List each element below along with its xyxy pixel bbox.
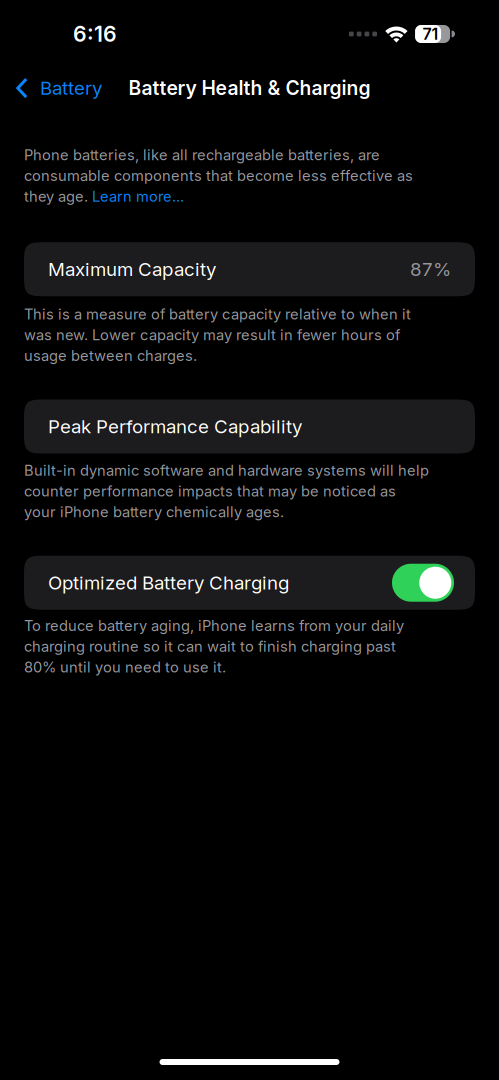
button[interactable]: Peak Performance Capability	[0, 399, 499, 453]
staticText: Phone batteries, like all rechargeable b…	[24, 146, 413, 205]
staticText: Battery	[40, 77, 102, 99]
button[interactable]	[392, 564, 454, 602]
staticText: Maximum Capacity	[48, 258, 216, 280]
staticText: 71	[423, 24, 439, 44]
staticText: Peak Performance Capability	[48, 415, 302, 438]
staticText: Battery Health & Charging	[128, 76, 370, 100]
staticText: 6:16	[73, 21, 117, 47]
button[interactable]: Battery	[0, 51, 112, 125]
staticText: This is a measure of battery capacity re…	[24, 305, 411, 364]
staticText: 87%	[410, 258, 451, 280]
staticText: Built-in dynamic software and hardware s…	[24, 461, 429, 521]
staticText: Optimized Battery Charging	[48, 571, 289, 594]
staticText: To reduce battery aging, iPhone learns f…	[24, 617, 404, 676]
